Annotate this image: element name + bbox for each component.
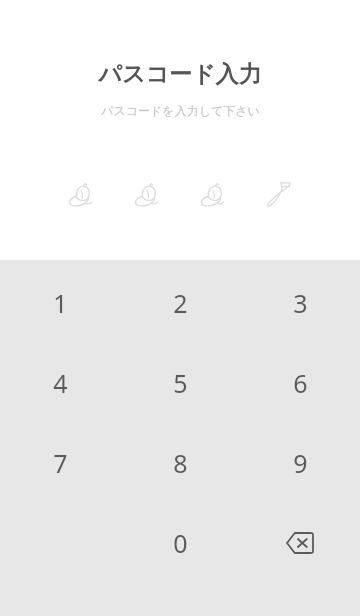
- button[interactable]: Backspace: [240, 503, 360, 583]
- staticText: パスコード入力: [98, 60, 262, 89]
- staticText: 6: [293, 366, 308, 400]
- staticText: 7: [53, 446, 68, 480]
- button[interactable]: 4: [0, 343, 120, 423]
- staticText: 5: [173, 366, 188, 400]
- button[interactable]: 3: [240, 263, 360, 343]
- staticText: パスコードを入力して下さい: [101, 103, 260, 118]
- button[interactable]: 2: [120, 263, 240, 343]
- button[interactable]: 0: [120, 503, 240, 583]
- button[interactable]: 9: [240, 423, 360, 503]
- staticText: 4: [53, 366, 68, 400]
- staticText: 8: [173, 446, 188, 480]
- button[interactable]: 7: [0, 423, 120, 503]
- staticText: 2: [173, 286, 188, 320]
- button[interactable]: 6: [240, 343, 360, 423]
- button[interactable]: 8: [120, 423, 240, 503]
- staticText: 1: [53, 286, 68, 320]
- staticText: 0: [173, 526, 188, 560]
- button[interactable]: 5: [120, 343, 240, 423]
- staticText: 9: [293, 446, 308, 480]
- button[interactable]: 1: [0, 263, 120, 343]
- staticText: 3: [293, 286, 308, 320]
